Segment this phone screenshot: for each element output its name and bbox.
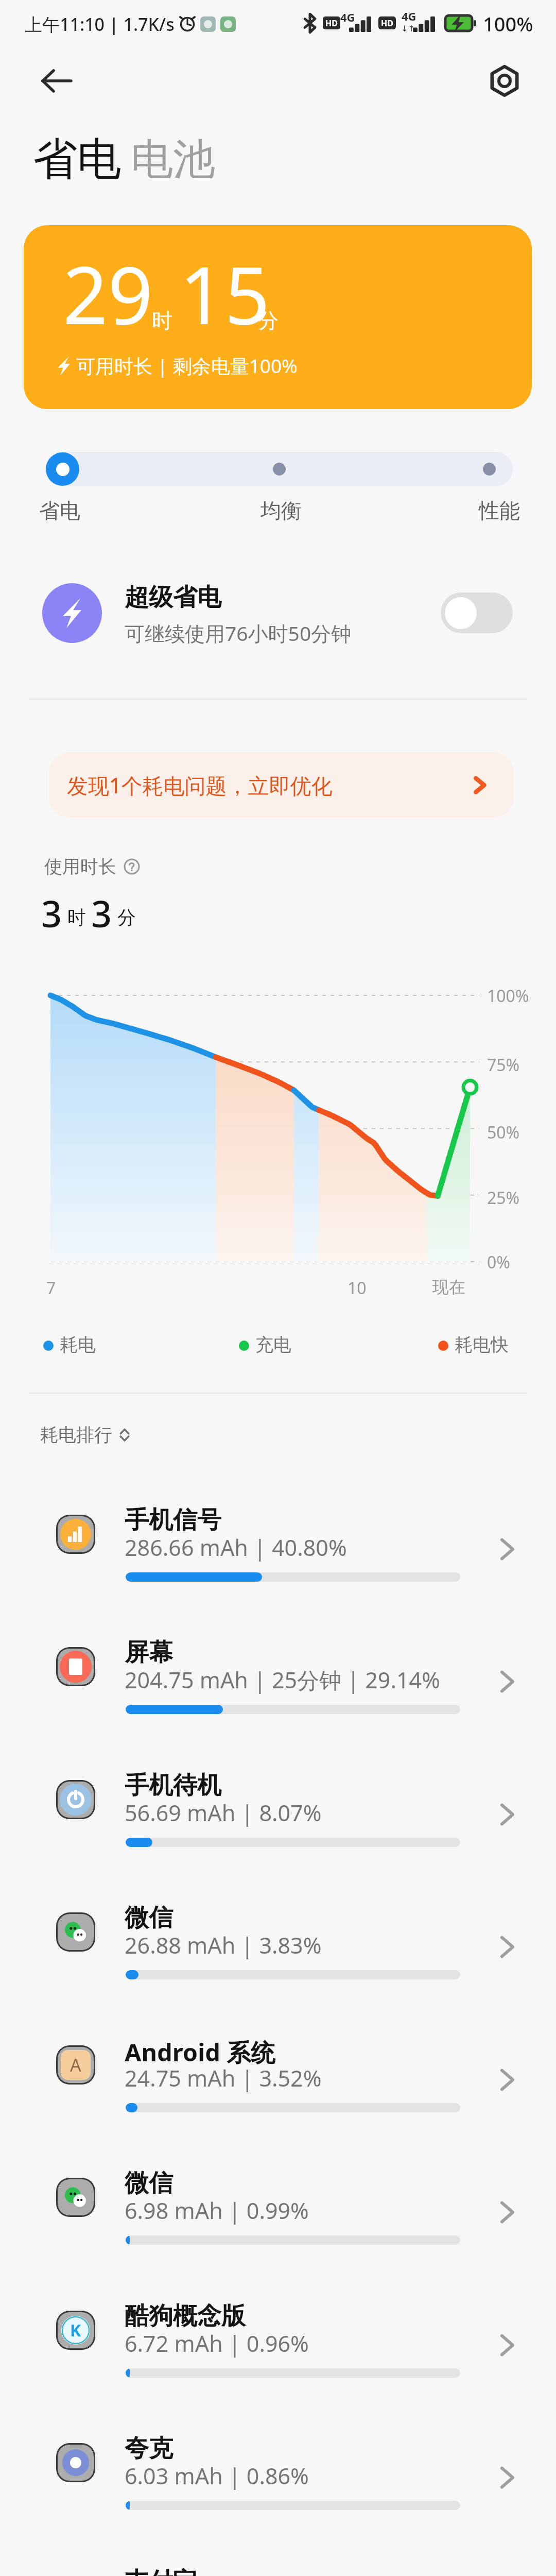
staticText: 25% xyxy=(487,1187,520,1209)
staticText: 性能 xyxy=(479,498,520,523)
staticText: 屏幕 xyxy=(125,1637,173,1668)
staticText: 4G xyxy=(340,9,355,25)
staticText: 75% xyxy=(487,1054,520,1076)
button[interactable]: 微信 xyxy=(0,1883,556,2011)
staticText: 酷狗概念版 xyxy=(125,2301,246,2331)
button[interactable]: 手机信号 xyxy=(0,1485,556,1614)
staticText: 使用时长 xyxy=(44,855,116,878)
staticText: 耗电排行 xyxy=(40,1423,112,1446)
staticText: 可继续使用76小时50分钟 xyxy=(125,619,352,647)
staticText: 分 xyxy=(258,308,279,333)
staticText: 0% xyxy=(487,1251,510,1274)
other: 详情 xyxy=(495,1537,519,1561)
staticText: 3 xyxy=(91,889,112,938)
other: 详情 xyxy=(495,1935,519,1959)
staticText: 286.66 mAh | 40.80% xyxy=(125,1532,347,1563)
staticText: 时 xyxy=(67,906,86,929)
button[interactable]: Back xyxy=(34,58,79,104)
staticText: 10 xyxy=(347,1277,367,1299)
button[interactable]: 夸克 xyxy=(0,2413,556,2542)
other: 详情 xyxy=(495,2200,519,2224)
button[interactable] xyxy=(483,463,496,476)
staticText: 充电 xyxy=(255,1333,291,1356)
staticText: HD xyxy=(381,18,393,29)
button[interactable]: A xyxy=(0,2015,556,2144)
staticText: 分 xyxy=(117,906,136,929)
staticText: Android 系统 xyxy=(125,2036,275,2069)
staticText: 6.98 mAh | 0.99% xyxy=(125,2195,309,2226)
button[interactable]: 发现1个耗电问题，立即优化 xyxy=(49,752,514,818)
staticText: 56.69 mAh | 8.07% xyxy=(125,1798,322,1828)
staticText: K xyxy=(70,2319,81,2342)
staticText: 微信 xyxy=(125,2168,173,2198)
staticText: 上午11:10 | 1.7K/s xyxy=(25,12,175,36)
button[interactable]: 省电 xyxy=(46,452,79,486)
button[interactable]: 手机待机 xyxy=(0,1750,556,1879)
button[interactable]: 说明 xyxy=(124,858,140,875)
button[interactable]: 支 xyxy=(0,2546,556,2576)
staticText: 50% xyxy=(487,1121,520,1144)
staticText: 超级省电 xyxy=(125,582,221,613)
staticText: 省电 xyxy=(33,131,121,187)
button[interactable]: Settings xyxy=(487,63,522,98)
staticText: 29 xyxy=(63,240,153,347)
staticText: 6.72 mAh | 0.96% xyxy=(125,2328,309,2359)
staticText: 204.75 mAh | 25分钟 | 29.14% xyxy=(125,1665,440,1695)
staticText: ↓↑ xyxy=(401,24,415,33)
staticText: 15 xyxy=(180,240,270,347)
staticText: 4G xyxy=(402,8,416,24)
button[interactable]: 超级省电 xyxy=(24,572,532,654)
staticText: 支付宝 xyxy=(125,2566,197,2576)
button[interactable]: 耗电排行 xyxy=(40,1423,132,1446)
staticText: A xyxy=(70,2053,81,2077)
button[interactable]: 超级省电 开关 xyxy=(441,592,513,633)
staticText: 现在 xyxy=(432,1277,465,1297)
other: 详情 xyxy=(495,1803,519,1826)
button[interactable]: 29 xyxy=(24,225,532,409)
other: 详情 xyxy=(495,1670,519,1693)
staticText: 电池 xyxy=(131,133,215,186)
staticText: HD xyxy=(325,18,338,29)
staticText: 100% xyxy=(487,985,529,1007)
button[interactable] xyxy=(273,463,286,476)
staticText: 可用时长 | 剩余电量100% xyxy=(76,352,298,379)
staticText: 耗电快 xyxy=(455,1333,509,1356)
staticText: 26.88 mAh | 3.83% xyxy=(125,1930,322,1960)
staticText: 7 xyxy=(46,1277,56,1299)
other: 详情 xyxy=(495,2466,519,2489)
staticText: 手机信号 xyxy=(125,1505,221,1535)
staticText: 均衡 xyxy=(260,498,302,523)
staticText: 手机待机 xyxy=(125,1770,221,1801)
button[interactable]: 屏幕 xyxy=(0,1617,556,1746)
staticText: 6.03 mAh | 0.86% xyxy=(125,2461,309,2491)
staticText: 微信 xyxy=(125,1903,173,1933)
button[interactable]: K xyxy=(0,2281,556,2410)
staticText: 夸克 xyxy=(125,2433,173,2464)
other: 详情 xyxy=(495,2068,519,2092)
staticText: 100% xyxy=(483,10,533,37)
staticText: 3 xyxy=(41,889,62,938)
staticText: 耗电 xyxy=(60,1333,96,1356)
staticText: 24.75 mAh | 3.52% xyxy=(125,2063,322,2093)
button[interactable]: 微信 xyxy=(0,2148,556,2277)
staticText: 时 xyxy=(152,308,172,333)
staticText: 省电 xyxy=(39,498,80,523)
staticText: 发现1个耗电问题，立即优化 xyxy=(67,771,333,800)
other: 详情 xyxy=(495,2333,519,2357)
